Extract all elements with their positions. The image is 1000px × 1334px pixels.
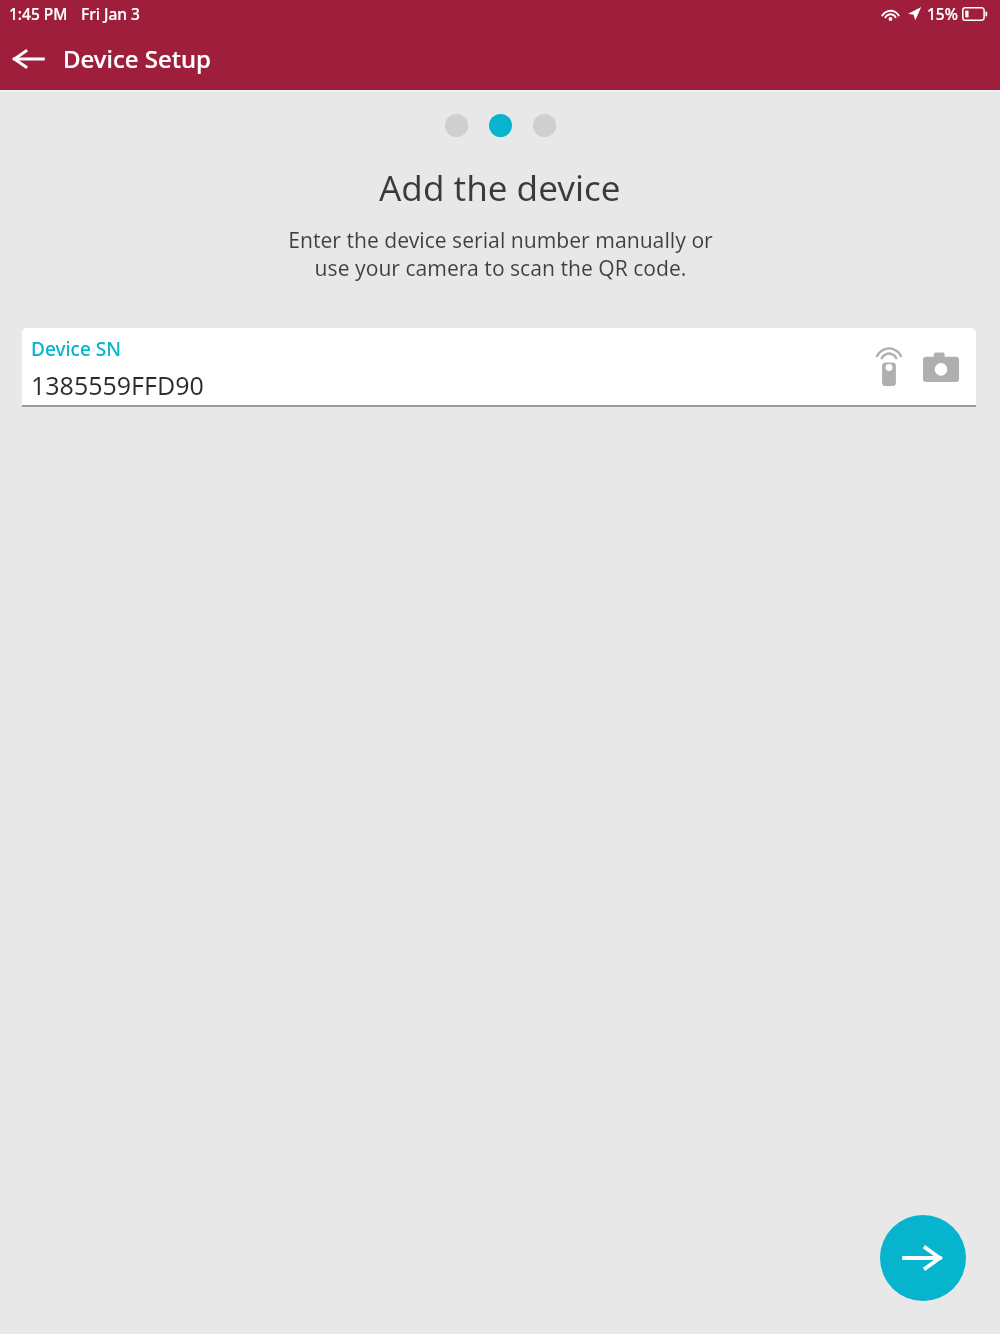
staticText: Device Setup [63, 42, 211, 75]
button[interactable]: Next [880, 1215, 966, 1301]
staticText: Enter the device serial number manually … [288, 226, 713, 282]
staticText: Add the device [379, 164, 621, 212]
button[interactable]: Scan with sensor [866, 344, 912, 390]
button[interactable]: Device SN [22, 328, 976, 405]
button[interactable]: Back [0, 31, 56, 87]
staticText: 15% [927, 3, 958, 24]
staticText: 1:45 PM [9, 3, 68, 24]
staticText: 1385559FFD90 [31, 368, 204, 402]
staticText: Device SN [31, 336, 121, 362]
button[interactable]: Scan QR code with camera [918, 344, 964, 390]
staticText: Fri Jan 3 [81, 3, 140, 24]
